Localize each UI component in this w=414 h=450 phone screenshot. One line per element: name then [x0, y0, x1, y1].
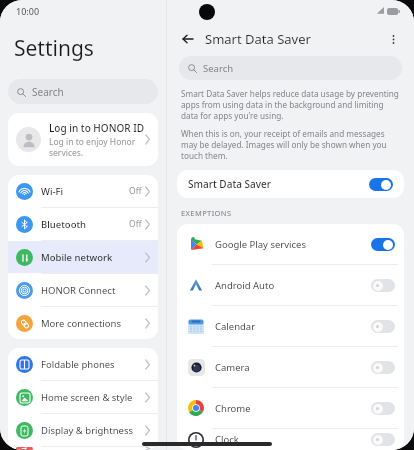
- button[interactable]: Wi-Fi: [8, 175, 158, 207]
- button[interactable]: Search: [179, 56, 402, 80]
- staticText: Home screen & style: [41, 391, 145, 404]
- button[interactable]: Off: [371, 402, 395, 415]
- button[interactable]: Google Play services: [177, 224, 404, 264]
- button[interactable]: Off: [371, 361, 395, 374]
- staticText: Foldable phones: [41, 358, 145, 371]
- staticText: Google Play services: [215, 238, 371, 251]
- button[interactable]: Foldable phones: [8, 348, 158, 380]
- button[interactable]: Chrome: [177, 388, 404, 428]
- staticText: Search: [203, 62, 234, 75]
- button[interactable]: Clock: [177, 429, 404, 450]
- button[interactable]: Log in to HONOR ID: [8, 113, 158, 166]
- button[interactable]: Android Auto: [177, 265, 404, 305]
- staticText: Smart Data Saver: [188, 177, 369, 191]
- button[interactable]: More options: [382, 28, 404, 50]
- button[interactable]: Smart Data Saver: [177, 170, 404, 198]
- staticText: Bluetooth: [41, 218, 129, 231]
- button[interactable]: More connections: [8, 307, 158, 339]
- staticText: Log in to HONOR ID: [49, 121, 145, 135]
- staticText: Settings: [14, 34, 94, 63]
- button[interactable]: Calendar: [177, 306, 404, 346]
- staticText: Android Auto: [215, 279, 371, 292]
- button[interactable]: Off: [371, 320, 395, 333]
- staticText: HONOR Connect: [41, 284, 145, 297]
- button[interactable]: Off: [371, 279, 395, 292]
- staticText: More connections: [41, 317, 145, 330]
- staticText: Smart Data Saver helps reduce data usage…: [181, 88, 400, 121]
- staticText: Smart Data Saver: [205, 30, 382, 48]
- button[interactable]: HONOR Connect: [8, 274, 158, 306]
- staticText: Camera: [215, 361, 371, 374]
- staticText: Log in to enjoy Honor services.: [49, 136, 145, 158]
- button[interactable]: Sounds & vibration: [8, 447, 158, 450]
- button[interactable]: Camera: [177, 347, 404, 387]
- staticText: 10:00: [16, 5, 40, 17]
- staticText: Off: [129, 218, 142, 230]
- button[interactable]: On: [369, 178, 393, 191]
- button[interactable]: Off: [371, 433, 395, 446]
- button[interactable]: Search: [8, 79, 158, 104]
- staticText: EXEMPTIONS: [181, 208, 232, 218]
- staticText: Wi-Fi: [41, 185, 129, 198]
- staticText: Calendar: [215, 320, 371, 333]
- button[interactable]: Display & brightness: [8, 414, 158, 446]
- staticText: Search: [32, 85, 64, 99]
- button[interactable]: Home screen & style: [8, 381, 158, 413]
- staticText: Display & brightness: [41, 424, 145, 437]
- button[interactable]: Back: [177, 28, 199, 50]
- button[interactable]: Bluetooth: [8, 208, 158, 240]
- button[interactable]: Mobile network: [8, 241, 158, 273]
- staticText: When this is on, your receipt of emails …: [181, 128, 400, 161]
- staticText: Mobile network: [41, 251, 145, 264]
- button[interactable]: On: [371, 238, 395, 251]
- staticText: Off: [129, 185, 142, 197]
- staticText: Chrome: [215, 402, 371, 415]
- staticText: Clock: [215, 433, 371, 446]
